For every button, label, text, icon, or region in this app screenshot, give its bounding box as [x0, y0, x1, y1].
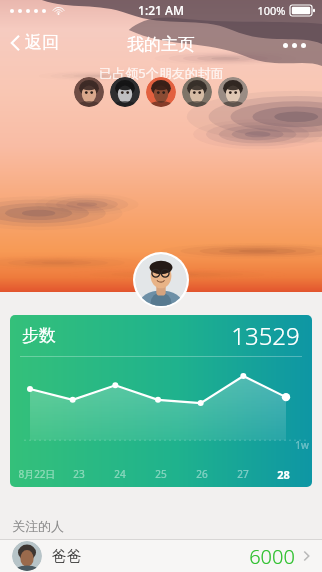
button[interactable]: 步数 [10, 315, 312, 487]
staticText: 已占领5个朋友的封面 [99, 64, 224, 82]
button[interactable]: Friend 4 [182, 77, 212, 107]
staticText: 13529 [231, 319, 300, 352]
button[interactable]: 爸爸 [0, 540, 322, 572]
staticText: 25 [155, 467, 167, 481]
button[interactable]: Friend 1 [74, 77, 104, 107]
button[interactable]: Friend 2 [110, 77, 140, 107]
staticText: 100% [257, 3, 286, 18]
staticText: 1:21 AM [138, 2, 184, 18]
staticText: 28 [277, 467, 290, 482]
button[interactable]: More options [277, 39, 312, 52]
staticText: 关注的人 [12, 518, 64, 534]
staticText: 1w [295, 438, 309, 452]
button[interactable]: My profile photo [135, 254, 187, 306]
staticText: 23 [73, 467, 85, 481]
staticText: 26 [196, 467, 208, 481]
button[interactable]: Friend 5 [218, 77, 248, 107]
button[interactable]: 返回 [6, 29, 63, 56]
staticText: 我的主页 [127, 34, 195, 55]
staticText: 8月22日 [18, 467, 56, 481]
button[interactable]: Friend 3 [146, 77, 176, 107]
staticText: 27 [237, 467, 249, 481]
staticText: 步数 [22, 325, 56, 346]
staticText: 返回 [25, 32, 59, 53]
staticText: 6000 [249, 543, 295, 570]
staticText: 爸爸 [52, 547, 82, 566]
staticText: 24 [114, 467, 126, 481]
